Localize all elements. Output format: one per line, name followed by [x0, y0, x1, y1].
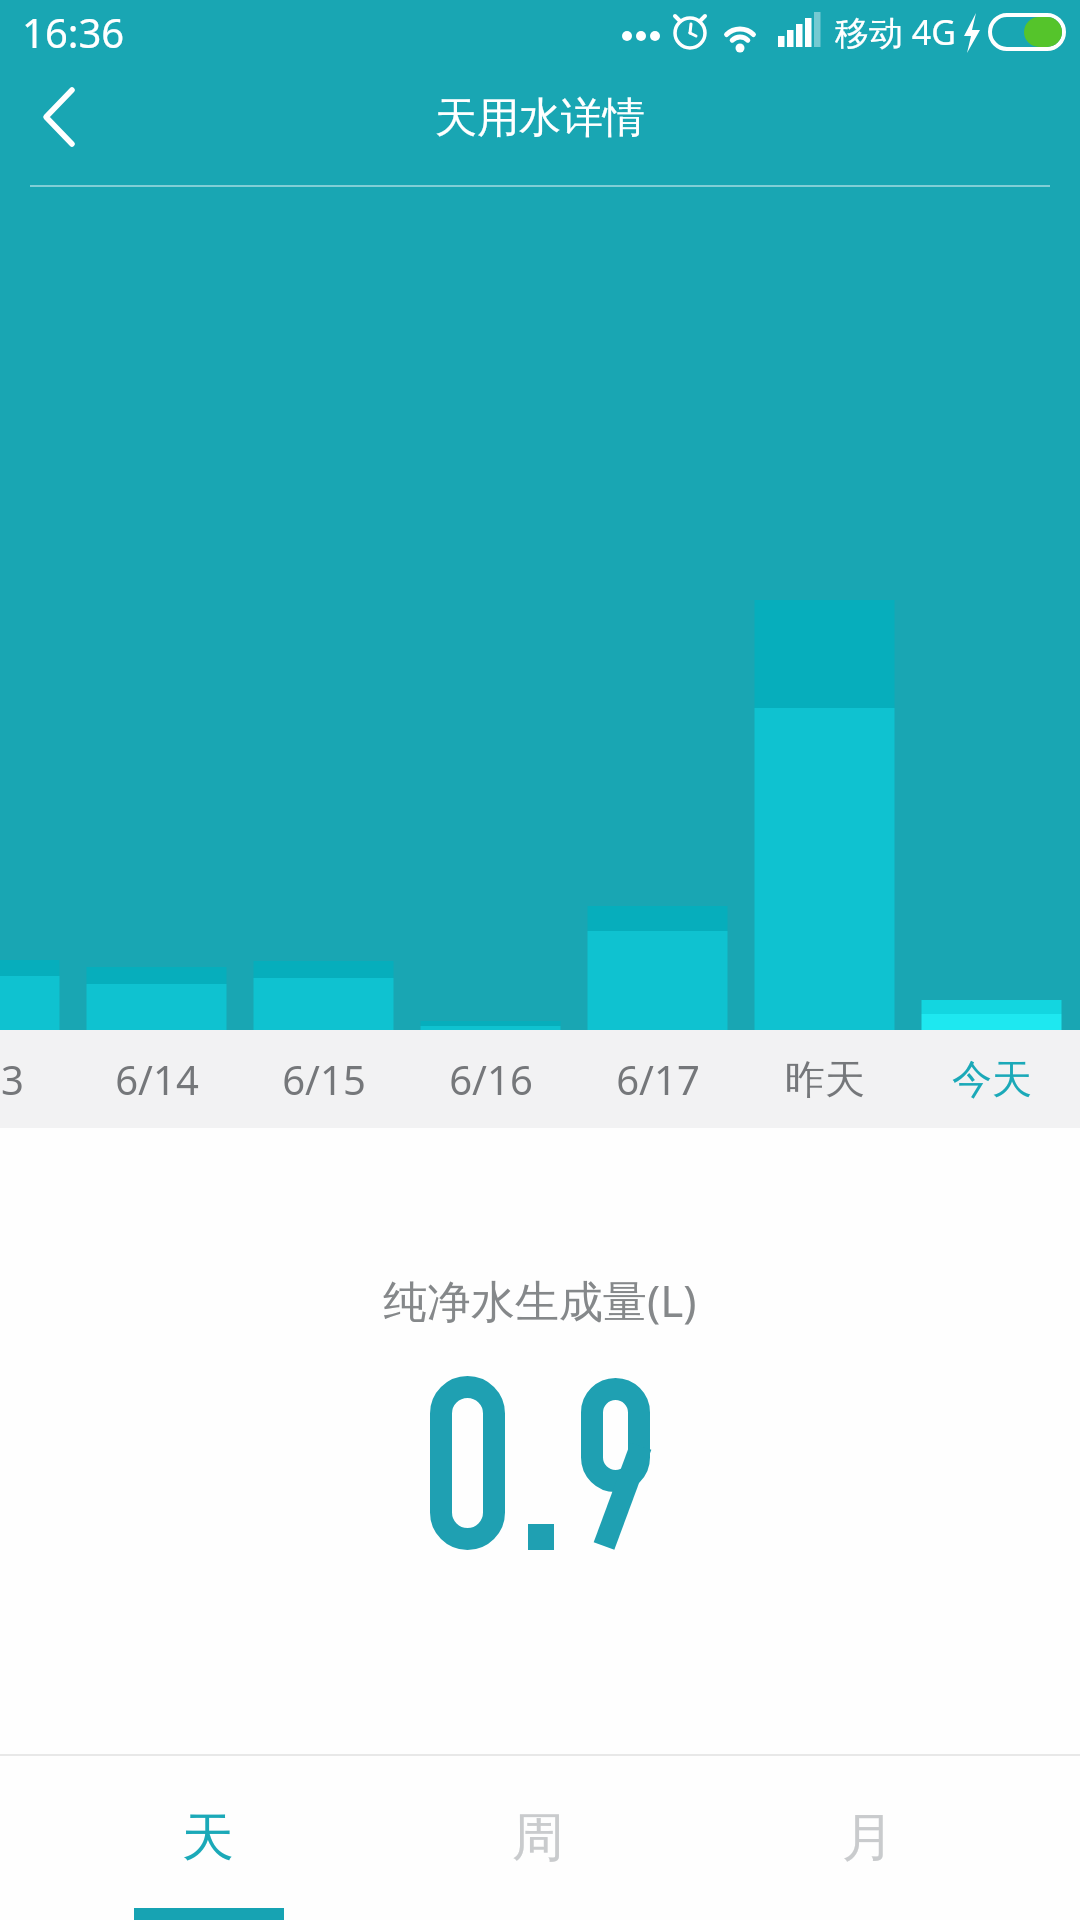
staticText: 月	[842, 1805, 894, 1871]
button[interactable]: 昨天	[745, 1030, 905, 1128]
staticText: 6/15	[282, 1052, 366, 1106]
button[interactable]: 6/14	[77, 1030, 237, 1128]
button[interactable]: 6/13	[0, 1030, 62, 1128]
staticText: 天	[182, 1805, 234, 1871]
staticText: 移动 4G	[835, 9, 957, 55]
staticText: 昨天	[785, 1054, 865, 1104]
button[interactable]: 6/17	[578, 1030, 738, 1128]
button[interactable]: 天	[43, 1756, 373, 1920]
staticText: 6/13	[0, 1052, 24, 1106]
staticText: 周	[512, 1805, 564, 1871]
button[interactable]: 月	[703, 1756, 1033, 1920]
button[interactable]: 6/15	[244, 1030, 404, 1128]
button[interactable]: 周	[373, 1756, 703, 1920]
button[interactable]	[28, 77, 92, 157]
button[interactable]: 今天	[912, 1030, 1072, 1128]
staticText: 6/16	[449, 1052, 533, 1106]
button[interactable]: 6/16	[411, 1030, 571, 1128]
staticText: 天用水详情	[435, 92, 645, 145]
staticText: 6/14	[115, 1052, 199, 1106]
staticText: 6/17	[616, 1052, 700, 1106]
staticText: 16:36	[22, 5, 125, 59]
staticText: 纯净水生成量(L)	[383, 1270, 697, 1330]
staticText: 今天	[952, 1054, 1032, 1104]
